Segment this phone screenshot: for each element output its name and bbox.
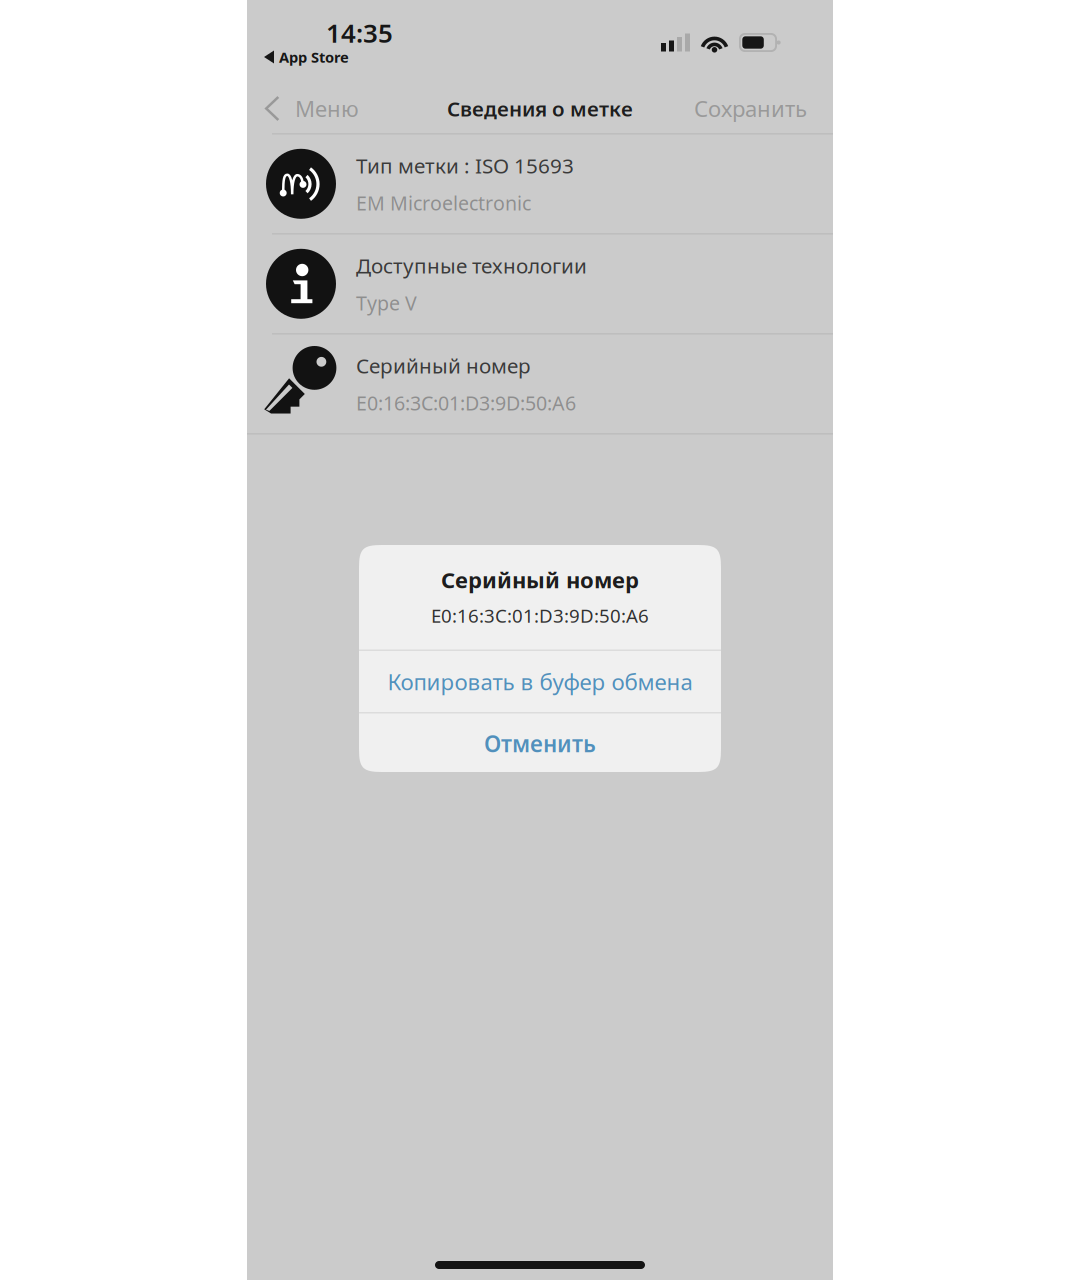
- staticText: Сведения о метке: [447, 94, 633, 122]
- staticText: Серийный номер: [356, 351, 531, 379]
- staticText: Серийный номер: [441, 565, 639, 595]
- staticText: Меню: [295, 93, 359, 123]
- staticText: EM Microelectronic: [356, 189, 531, 216]
- button[interactable]: Отменить: [359, 713, 721, 773]
- staticText: Тип метки : ISO 15693: [356, 151, 574, 179]
- staticText: App Store: [279, 47, 349, 67]
- button[interactable]: Серийный номер: [247, 335, 833, 433]
- button[interactable]: Копировать в буфер обмена: [359, 651, 721, 712]
- button[interactable]: Доступные технологии: [247, 235, 833, 333]
- staticText: Доступные технологии: [356, 251, 587, 279]
- staticText: E0:16:3C:01:D3:9D:50:A6: [431, 603, 649, 628]
- staticText: Копировать в буфер обмена: [387, 666, 692, 697]
- staticText: Отменить: [484, 728, 596, 759]
- button[interactable]: Сохранить: [694, 87, 833, 129]
- button[interactable]: Меню: [247, 87, 359, 129]
- staticText: Type V: [356, 289, 417, 316]
- button[interactable]: Back to App Store: [247, 0, 349, 67]
- button[interactable]: Тип метки : ISO 15693: [247, 135, 833, 233]
- staticText: 14:35: [326, 15, 393, 50]
- staticText: Сохранить: [694, 93, 807, 123]
- staticText: E0:16:3C:01:D3:9D:50:A6: [356, 389, 576, 416]
